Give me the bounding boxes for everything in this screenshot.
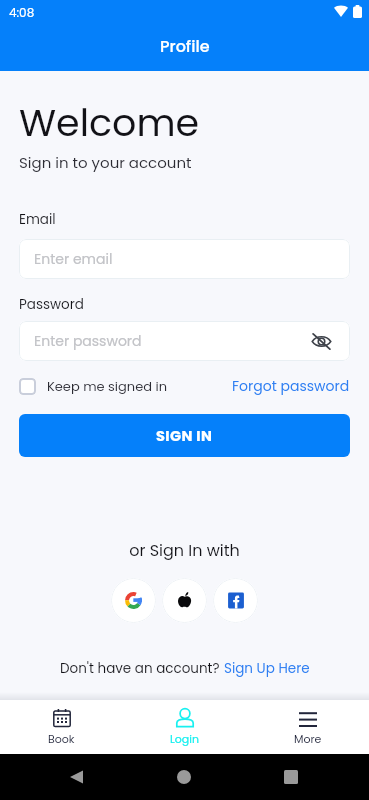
staticText: Sign Up Here	[224, 659, 310, 678]
staticText: Don't have an account?	[60, 659, 224, 678]
staticText: Email	[19, 210, 56, 229]
staticText: Password	[19, 295, 84, 314]
staticText: SIGN IN	[156, 426, 213, 446]
staticText: More	[294, 731, 322, 746]
staticText: Login	[170, 731, 199, 746]
staticText: Profile	[160, 35, 210, 57]
button[interactable]: More	[246, 700, 369, 754]
button[interactable]: SIGN IN	[19, 414, 350, 457]
staticText: or Sign In with	[19, 539, 350, 561]
button[interactable]: Sign in with Google	[111, 578, 156, 623]
button[interactable]: Book	[0, 700, 123, 754]
button[interactable]: Sign in with Apple	[162, 578, 207, 623]
button[interactable]: Enter email	[19, 239, 350, 279]
button[interactable]: Forgot password	[232, 376, 350, 396]
staticText: Book	[48, 731, 75, 746]
staticText: Welcome	[19, 96, 200, 149]
staticText: Keep me signed in	[47, 377, 168, 395]
button[interactable]: Sign Up Here	[224, 659, 310, 678]
button[interactable]: Enter password	[19, 321, 350, 361]
button[interactable]: Login	[123, 700, 246, 754]
other: Show password	[311, 331, 332, 352]
staticText: Forgot password	[232, 376, 350, 396]
button[interactable]: Keep me signed in	[19, 377, 168, 395]
staticText: Enter email	[34, 249, 113, 269]
staticText: Enter password	[34, 331, 142, 351]
staticText: Sign in to your account	[19, 152, 192, 173]
button[interactable]: Sign in with Facebook	[213, 578, 258, 623]
staticText: 4:08	[9, 4, 35, 21]
